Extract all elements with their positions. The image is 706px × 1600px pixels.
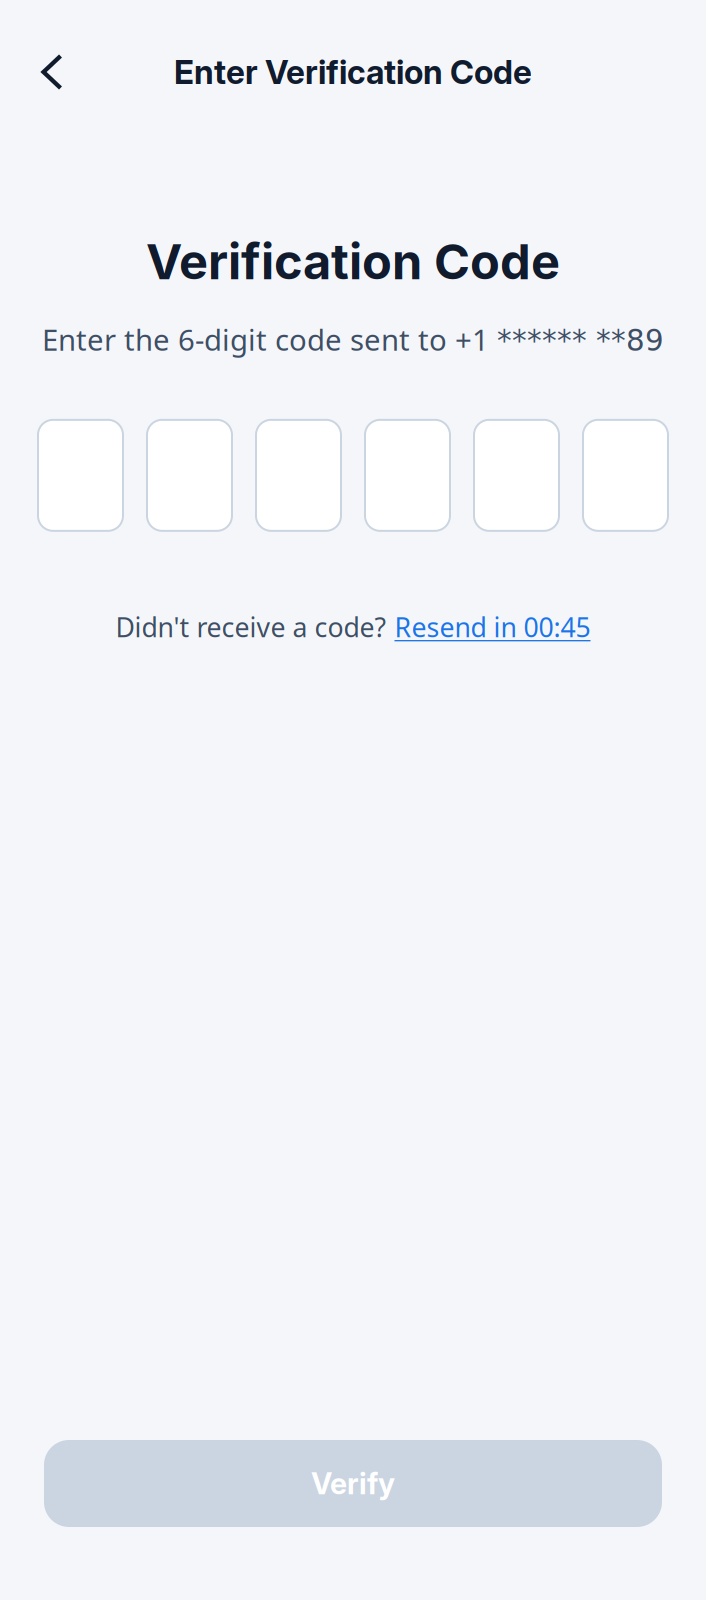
staticText: Enter Verification Code: [174, 52, 532, 92]
staticText: Resend in 00:45: [394, 609, 590, 645]
button[interactable]: Verify: [44, 1440, 662, 1527]
button[interactable]: Digit 3: [256, 420, 341, 531]
button[interactable]: Digit 5: [474, 420, 559, 531]
button[interactable]: Digit 4: [365, 420, 450, 531]
button[interactable]: Back: [28, 36, 74, 108]
button[interactable]: Digit 1: [38, 420, 123, 531]
button[interactable]: Resend in 00:45: [394, 609, 590, 645]
staticText: Enter the 6-digit code sent to +1 ******…: [42, 320, 664, 359]
staticText: Didn't receive a code?: [115, 609, 386, 645]
button[interactable]: Digit 6: [583, 420, 668, 531]
button[interactable]: Digit 2: [147, 420, 232, 531]
staticText: Verification Code: [146, 232, 560, 291]
staticText: Verify: [311, 1466, 395, 1501]
